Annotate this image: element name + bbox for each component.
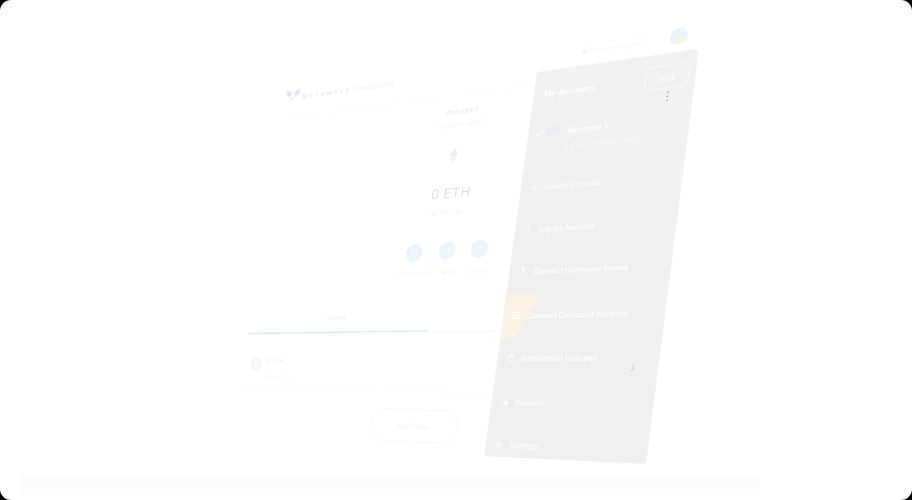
button[interactable]: MetaMask Institutional wallet bbox=[0, 0, 912, 500]
